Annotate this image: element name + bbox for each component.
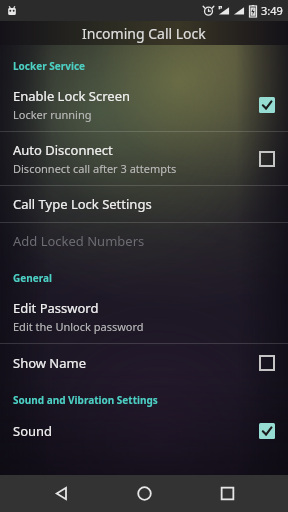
staticText: General [13,271,52,285]
staticText: Edit the Unlock password [13,319,144,334]
button[interactable]: Call Type Lock Settings [0,186,288,222]
staticText: 3:49 [261,3,283,18]
button[interactable]: Show Name [0,344,288,381]
button[interactable]: Edit Password [0,290,288,343]
staticText: Locker Service [13,59,86,73]
button[interactable]: Sound [0,412,288,449]
staticText: Add Locked Numbers [13,232,145,250]
button[interactable]: Checked [257,421,276,440]
staticText: Locker running [13,107,92,122]
button[interactable]: Enable Lock Screen [0,78,288,131]
button[interactable]: Back [39,475,83,512]
button[interactable]: Home [122,475,166,512]
staticText: Auto Disconnect [13,141,113,159]
staticText: Incoming Call Lock [82,24,206,43]
button[interactable]: Unchecked [257,353,276,372]
button[interactable]: Unchecked [257,149,276,168]
staticText: Show Name [13,354,87,372]
button[interactable]: Checked [257,95,276,114]
button[interactable]: Recent apps [205,475,249,512]
staticText: Disconnect call after 3 attempts [13,161,177,176]
staticText: Enable Lock Screen [13,87,131,105]
staticText: Edit Password [13,299,99,317]
button[interactable]: Add Locked Numbers [0,223,288,259]
staticText: Sound and Vibration Settings [13,393,158,407]
staticText: Call Type Lock Settings [13,195,152,213]
staticText: Sound [13,422,53,440]
button[interactable]: Auto Disconnect [0,132,288,185]
